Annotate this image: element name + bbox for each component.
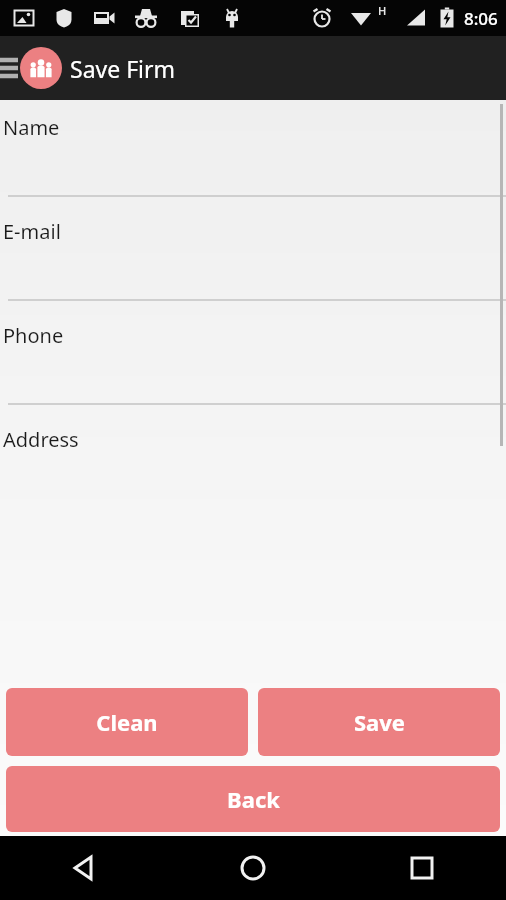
- staticText: Clean: [96, 707, 158, 737]
- button[interactable]: Save: [258, 688, 500, 756]
- staticText: Back: [227, 784, 280, 814]
- button[interactable]: Back: [6, 766, 500, 832]
- staticText: Save: [354, 707, 405, 737]
- staticText: Name: [3, 114, 60, 141]
- staticText: E-mail: [3, 218, 61, 245]
- staticText: Phone: [3, 322, 64, 349]
- button[interactable]: Recent apps: [337, 836, 506, 900]
- staticText: Address: [3, 426, 79, 453]
- button[interactable]: Home: [168, 836, 337, 900]
- button[interactable]: Clean: [6, 688, 248, 756]
- button[interactable]: Open navigation menu: [0, 36, 18, 100]
- staticText: H: [378, 3, 387, 18]
- staticText: 8:06: [464, 7, 498, 30]
- staticText: Save Firm: [70, 53, 176, 84]
- button[interactable]: Back: [0, 836, 168, 900]
